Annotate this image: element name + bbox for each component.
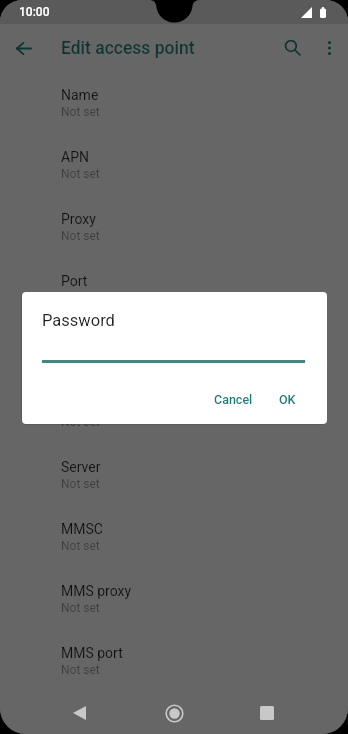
staticText: Not set xyxy=(61,291,100,305)
staticText: Server xyxy=(61,459,101,475)
button[interactable]: Server xyxy=(0,444,348,506)
staticText: Not set xyxy=(61,415,100,429)
button[interactable]: OK xyxy=(277,388,298,411)
button[interactable]: More options xyxy=(309,28,348,68)
button[interactable]: MMS port xyxy=(0,630,348,692)
button[interactable]: MMS proxy xyxy=(0,568,348,630)
button[interactable]: Proxy xyxy=(0,196,348,258)
button[interactable]: MMSC xyxy=(0,506,348,568)
staticText: Cancel xyxy=(214,392,253,407)
staticText: Not set xyxy=(61,353,100,367)
staticText: Password xyxy=(42,311,115,330)
staticText: Not set xyxy=(61,663,100,677)
staticText: Not set xyxy=(61,229,100,243)
button[interactable]: Recent apps xyxy=(245,691,289,734)
staticText: MMSC xyxy=(61,521,103,537)
staticText: APN xyxy=(61,149,89,165)
button[interactable]: Home xyxy=(152,691,196,734)
button[interactable]: Back xyxy=(57,691,101,734)
button[interactable]: APN xyxy=(0,134,348,196)
button[interactable]: Password xyxy=(0,382,348,444)
staticText: MMS port xyxy=(61,645,123,661)
button[interactable]: Cancel xyxy=(212,388,255,411)
staticText: Edit access point xyxy=(61,38,195,59)
button[interactable]: Navigate up xyxy=(0,24,48,72)
staticText: Not set xyxy=(61,477,100,491)
staticText: Proxy xyxy=(61,211,96,227)
staticText: MMS proxy xyxy=(61,583,132,599)
staticText: Not set xyxy=(61,601,100,615)
staticText: Not set xyxy=(61,539,100,553)
staticText: Port xyxy=(61,273,88,289)
staticText: OK xyxy=(279,392,296,407)
staticText: Not set xyxy=(61,167,100,181)
button[interactable]: Search xyxy=(271,26,315,70)
button[interactable]: Name xyxy=(0,72,348,134)
staticText: 10:00 xyxy=(19,5,50,19)
staticText: Not set xyxy=(61,105,100,119)
button[interactable]: Port xyxy=(0,258,348,320)
staticText: Name xyxy=(61,87,99,103)
button[interactable]: Username xyxy=(0,320,348,382)
